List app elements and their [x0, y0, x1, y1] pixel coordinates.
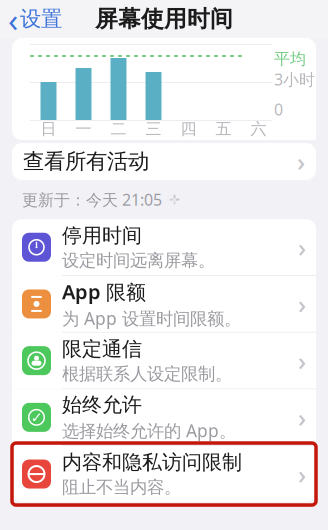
staticText: 选择始终允许的 App。 — [62, 419, 236, 442]
button[interactable]: ✓ — [12, 389, 316, 445]
staticText: › — [298, 457, 306, 491]
staticText: 四 — [180, 119, 196, 139]
staticText: 一 — [75, 119, 91, 139]
staticText: 根据联系人设定限制。 — [62, 363, 232, 385]
staticText: ‹ — [8, 0, 18, 41]
staticText: › — [297, 145, 305, 178]
button[interactable]: ‹ — [0, 0, 70, 38]
staticText: 3小时 — [274, 69, 315, 90]
staticText: 为 App 设置时间限额。 — [62, 307, 241, 330]
staticText: 屏幕使用时间 — [95, 5, 233, 33]
staticText: › — [298, 230, 306, 264]
staticText: 平均 — [274, 49, 306, 69]
staticText: 设置 — [20, 6, 62, 32]
staticText: 三 — [145, 119, 161, 139]
staticText: 阻止不当内容。 — [62, 477, 181, 498]
staticText: 查看所有活动 — [23, 148, 149, 175]
staticText: › — [298, 287, 306, 321]
staticText: ✓ — [30, 409, 42, 426]
staticText: 日 — [40, 119, 56, 139]
staticText: 二 — [110, 119, 126, 139]
staticText: 六 — [250, 119, 266, 139]
staticText: 停用时间 — [62, 223, 142, 248]
button[interactable]: App 限额 — [12, 276, 316, 332]
staticText: 0 — [274, 99, 283, 120]
staticText: 更新于：今天 21:05 — [22, 189, 162, 210]
staticText: › — [298, 344, 306, 377]
staticText: 内容和隐私访问限制 — [62, 450, 242, 475]
button[interactable]: 内容和隐私访问限制 — [12, 446, 316, 502]
staticText: App 限额 — [62, 278, 146, 305]
button[interactable]: 查看所有活动 — [12, 143, 316, 180]
staticText: 设定时间远离屏幕。 — [62, 250, 215, 271]
staticText: 五 — [215, 119, 231, 139]
button[interactable]: 停用时间 — [12, 219, 316, 275]
staticText: 限定通信 — [62, 337, 142, 361]
staticText: › — [298, 400, 306, 434]
button[interactable]: 限定通信 — [12, 333, 316, 389]
staticText: 始终允许 — [62, 393, 142, 417]
